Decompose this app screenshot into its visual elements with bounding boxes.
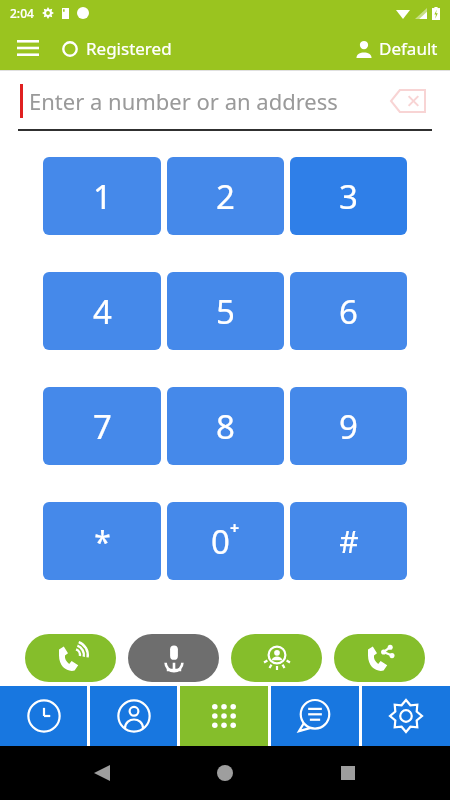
button[interactable]: Open navigation menu — [8, 28, 48, 68]
staticText: 3 — [339, 174, 358, 219]
staticText: Registered — [86, 37, 172, 60]
button[interactable]: * — [43, 502, 161, 580]
button[interactable]: Default — [355, 37, 438, 60]
button[interactable]: Transfer call — [334, 634, 425, 682]
staticText: 2 — [216, 174, 235, 219]
staticText: 5 — [216, 289, 235, 334]
staticText: Enter a number or an address — [29, 86, 338, 116]
staticText: 6 — [339, 289, 358, 334]
button[interactable]: Dialpad — [180, 686, 268, 746]
button[interactable]: Contacts — [90, 686, 177, 746]
staticText: 7 — [93, 404, 112, 449]
staticText: + — [230, 517, 240, 539]
button[interactable]: 3 — [290, 157, 407, 235]
button[interactable]: 7 — [43, 387, 161, 465]
staticText: 2:04 — [10, 5, 34, 21]
button[interactable]: Call — [25, 634, 116, 682]
button[interactable]: Backspace — [386, 84, 430, 118]
button[interactable]: Recent calls — [0, 686, 87, 746]
button[interactable]: # — [290, 502, 407, 580]
staticText: # — [339, 521, 359, 562]
button[interactable]: Back — [84, 755, 120, 791]
button[interactable]: 9 — [290, 387, 407, 465]
button[interactable]: 0 — [167, 502, 284, 580]
button[interactable]: Recent apps — [330, 755, 366, 791]
staticText: 0 — [211, 519, 230, 564]
button[interactable]: 8 — [167, 387, 284, 465]
staticText: 9 — [339, 404, 358, 449]
button[interactable]: 5 — [167, 272, 284, 350]
button[interactable]: Settings — [362, 686, 450, 746]
staticText: 8 — [216, 404, 235, 449]
button[interactable]: Home — [207, 755, 243, 791]
button[interactable]: 4 — [43, 272, 161, 350]
button[interactable]: 2 — [167, 157, 284, 235]
button[interactable]: Messages — [271, 686, 359, 746]
staticText: Default — [379, 37, 438, 60]
button[interactable]: Contacts — [231, 634, 322, 682]
staticText: 1 — [93, 174, 112, 219]
button[interactable]: 6 — [290, 272, 407, 350]
button[interactable]: 1 — [43, 157, 161, 235]
staticText: * — [94, 521, 111, 562]
staticText: 4 — [93, 289, 112, 334]
button[interactable]: Registered — [62, 37, 172, 60]
button[interactable]: Voice input — [128, 634, 219, 682]
